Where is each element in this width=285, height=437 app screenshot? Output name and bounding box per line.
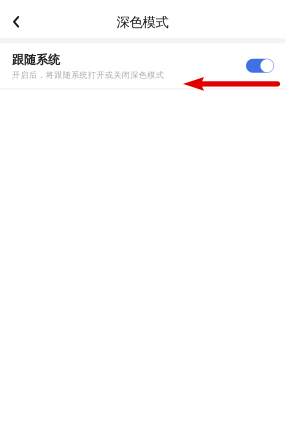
staticText: 开启后，将跟随系统打开或关闭深色模式 [12,70,164,80]
staticText: 跟随系统 [12,52,60,67]
button[interactable]: 返回 [0,0,40,38]
button[interactable]: 跟随系统 [0,43,285,88]
staticText: 深色模式 [116,14,168,30]
